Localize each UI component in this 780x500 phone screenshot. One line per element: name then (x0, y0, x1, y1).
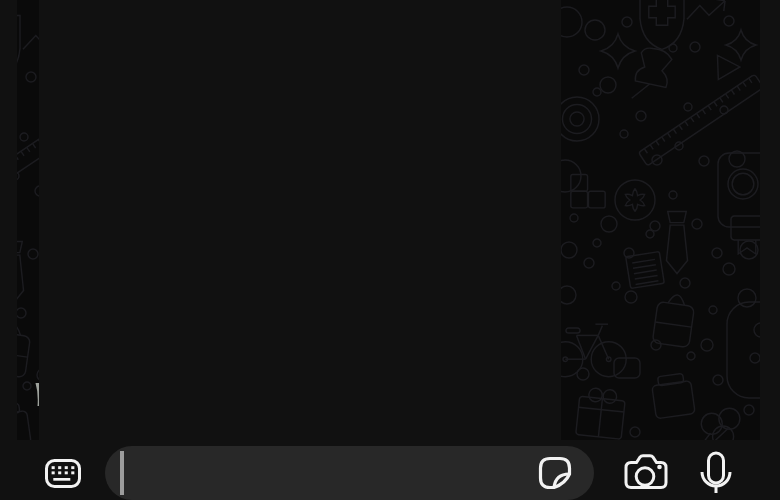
button[interactable]: Keyboard (41, 455, 83, 491)
button[interactable]: Stickers (537, 455, 573, 491)
button[interactable]: Stickers (105, 446, 594, 500)
button[interactable]: Camera (621, 455, 669, 493)
button[interactable]: Voice message (698, 450, 734, 494)
